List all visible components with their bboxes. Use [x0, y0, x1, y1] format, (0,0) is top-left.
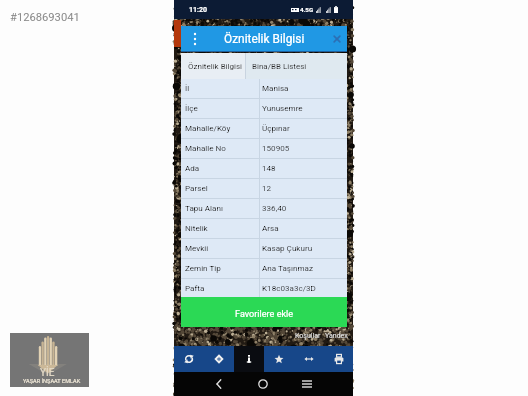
button[interactable]: Print [324, 346, 353, 372]
button[interactable]: Home [254, 375, 272, 393]
button[interactable]: Close [331, 33, 343, 45]
staticText: 336,40 [262, 203, 287, 212]
button[interactable]: More options [190, 32, 200, 46]
button[interactable]: Ada [181, 159, 347, 179]
button[interactable]: İl [181, 79, 347, 99]
button[interactable]: Bina/BB Listesi [246, 53, 347, 79]
staticText: Tapu Alanı [185, 203, 223, 212]
staticText: Ada [185, 163, 200, 172]
staticText: Yandex [325, 332, 348, 340]
staticText: Koşullar [295, 332, 321, 340]
button[interactable]: Mevkii [181, 239, 347, 259]
staticText: 148 [262, 163, 276, 172]
button[interactable]: Refresh [174, 346, 204, 372]
button[interactable]: Pafta [181, 279, 347, 299]
staticText: 150905 [262, 143, 290, 152]
staticText: K18c03a3c/3D [262, 283, 316, 292]
staticText: Manisa [262, 83, 289, 92]
button[interactable]: Measure [294, 346, 324, 372]
staticText: Öznitelik Bilgisi [224, 32, 305, 46]
button[interactable]: Favorilere ekle [181, 297, 347, 327]
staticText: YAŞAR İNŞAAT EMLAK [23, 378, 81, 385]
button[interactable]: Mahalle/Köy [181, 119, 347, 139]
button[interactable]: Tapu Alanı [181, 199, 347, 219]
button[interactable]: Recent apps [298, 375, 316, 393]
staticText: Bina/BB Listesi [252, 62, 307, 71]
staticText: 12 [262, 183, 272, 192]
button[interactable]: Favorite [264, 346, 294, 372]
staticText: Arsa [262, 223, 279, 232]
button[interactable]: Info [234, 346, 264, 372]
staticText: Parsel [185, 183, 208, 192]
staticText: Ana Taşınmaz [262, 263, 313, 272]
staticText: Yunusemre [262, 103, 303, 112]
staticText: Favorilere ekle [235, 309, 294, 320]
staticText: İl [185, 83, 190, 92]
button[interactable]: Parsel [181, 179, 347, 199]
button[interactable]: Back [210, 375, 228, 393]
button[interactable]: Locate [204, 346, 234, 372]
staticText: Kasap Çukuru [262, 243, 313, 252]
staticText: Pafta [185, 283, 205, 292]
staticText: İlçe [185, 103, 198, 112]
staticText: YİE [40, 367, 55, 379]
staticText: 11:20 [189, 6, 208, 14]
staticText: Mevkii [185, 243, 209, 252]
staticText: Mahalle No [185, 143, 226, 152]
staticText: Zemin Tip [185, 263, 221, 272]
button[interactable]: Mahalle No [181, 139, 347, 159]
staticText: Nitelik [185, 223, 208, 232]
staticText: #1268693041 [10, 11, 80, 24]
button[interactable]: İlçe [181, 99, 347, 119]
staticText: Üçpınar [262, 123, 290, 132]
staticText: Mahalle/Köy [185, 123, 231, 132]
staticText: 4.5G [300, 6, 314, 13]
button[interactable]: Zemin Tip [181, 259, 347, 279]
staticText: Öznitelik Bilgisi [188, 62, 243, 71]
button[interactable]: Öznitelik Bilgisi [181, 53, 245, 79]
button[interactable]: Nitelik [181, 219, 347, 239]
